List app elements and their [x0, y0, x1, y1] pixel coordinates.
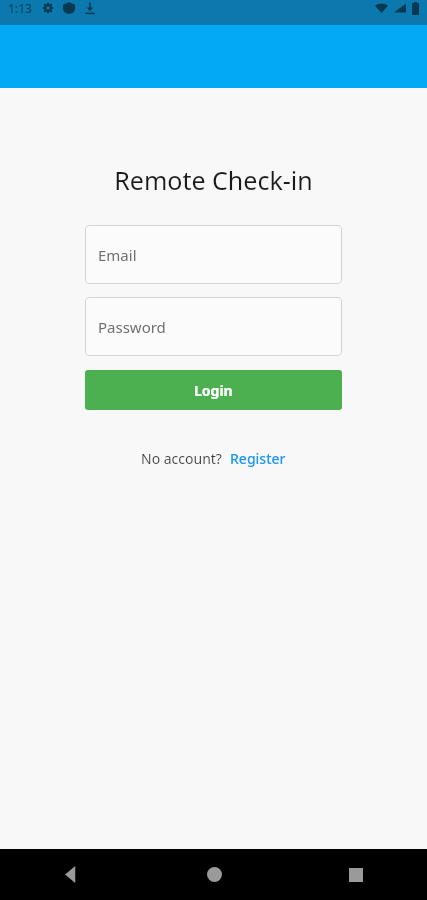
button[interactable]: Home: [143, 849, 285, 900]
staticText: Password: [98, 317, 166, 337]
staticText: Login: [194, 381, 233, 400]
staticText: Register: [230, 449, 286, 468]
staticText: 1:13: [8, 0, 32, 16]
staticText: Email: [98, 245, 137, 265]
staticText: No account?: [141, 449, 222, 468]
staticText: Remote Check-in: [114, 163, 313, 197]
button[interactable]: Recent apps: [285, 849, 427, 900]
button[interactable]: Login: [85, 370, 342, 410]
button[interactable]: Email: [85, 225, 342, 284]
button[interactable]: Password: [85, 297, 342, 356]
button[interactable]: Register: [230, 449, 286, 468]
button[interactable]: Back: [0, 849, 143, 900]
